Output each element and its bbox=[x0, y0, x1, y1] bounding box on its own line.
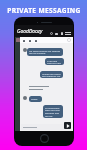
button[interactable]: Send bbox=[64, 122, 71, 129]
button[interactable]: Hi! Glad! Thanks for adding me as a frie… bbox=[27, 48, 63, 56]
staticText: Great bbox=[31, 97, 38, 100]
button[interactable]: Menu bbox=[65, 32, 71, 35]
button[interactable]: Video bbox=[28, 39, 31, 42]
button[interactable]: Notifications bbox=[60, 32, 63, 35]
staticText: I can see that you are quite nearby. bbox=[47, 59, 62, 64]
button[interactable]: Maybe we could get together for a coffee… bbox=[40, 71, 63, 78]
button[interactable]: I'll subscribe with you this evening and… bbox=[43, 105, 63, 118]
staticText: Hi! Glad! Thanks for adding me as a frie… bbox=[29, 49, 61, 55]
staticText: PRIVATE MESSAGING bbox=[7, 6, 81, 15]
button[interactable]: Profile bbox=[16, 38, 20, 42]
button[interactable]: Call bbox=[22, 39, 25, 42]
button[interactable] bbox=[21, 124, 64, 130]
staticText: I'll subscribe with you this evening and… bbox=[45, 106, 61, 117]
button[interactable]: Search bbox=[50, 32, 53, 35]
button[interactable]: I can see that you are quite nearby. bbox=[45, 58, 64, 65]
staticText: Maybe we could get together for a coffee… bbox=[42, 72, 61, 77]
button[interactable]: Great bbox=[29, 96, 42, 102]
button[interactable]: Messages bbox=[55, 32, 58, 35]
staticText: GoodDoozy bbox=[17, 28, 43, 35]
button[interactable]: More bbox=[34, 39, 37, 42]
